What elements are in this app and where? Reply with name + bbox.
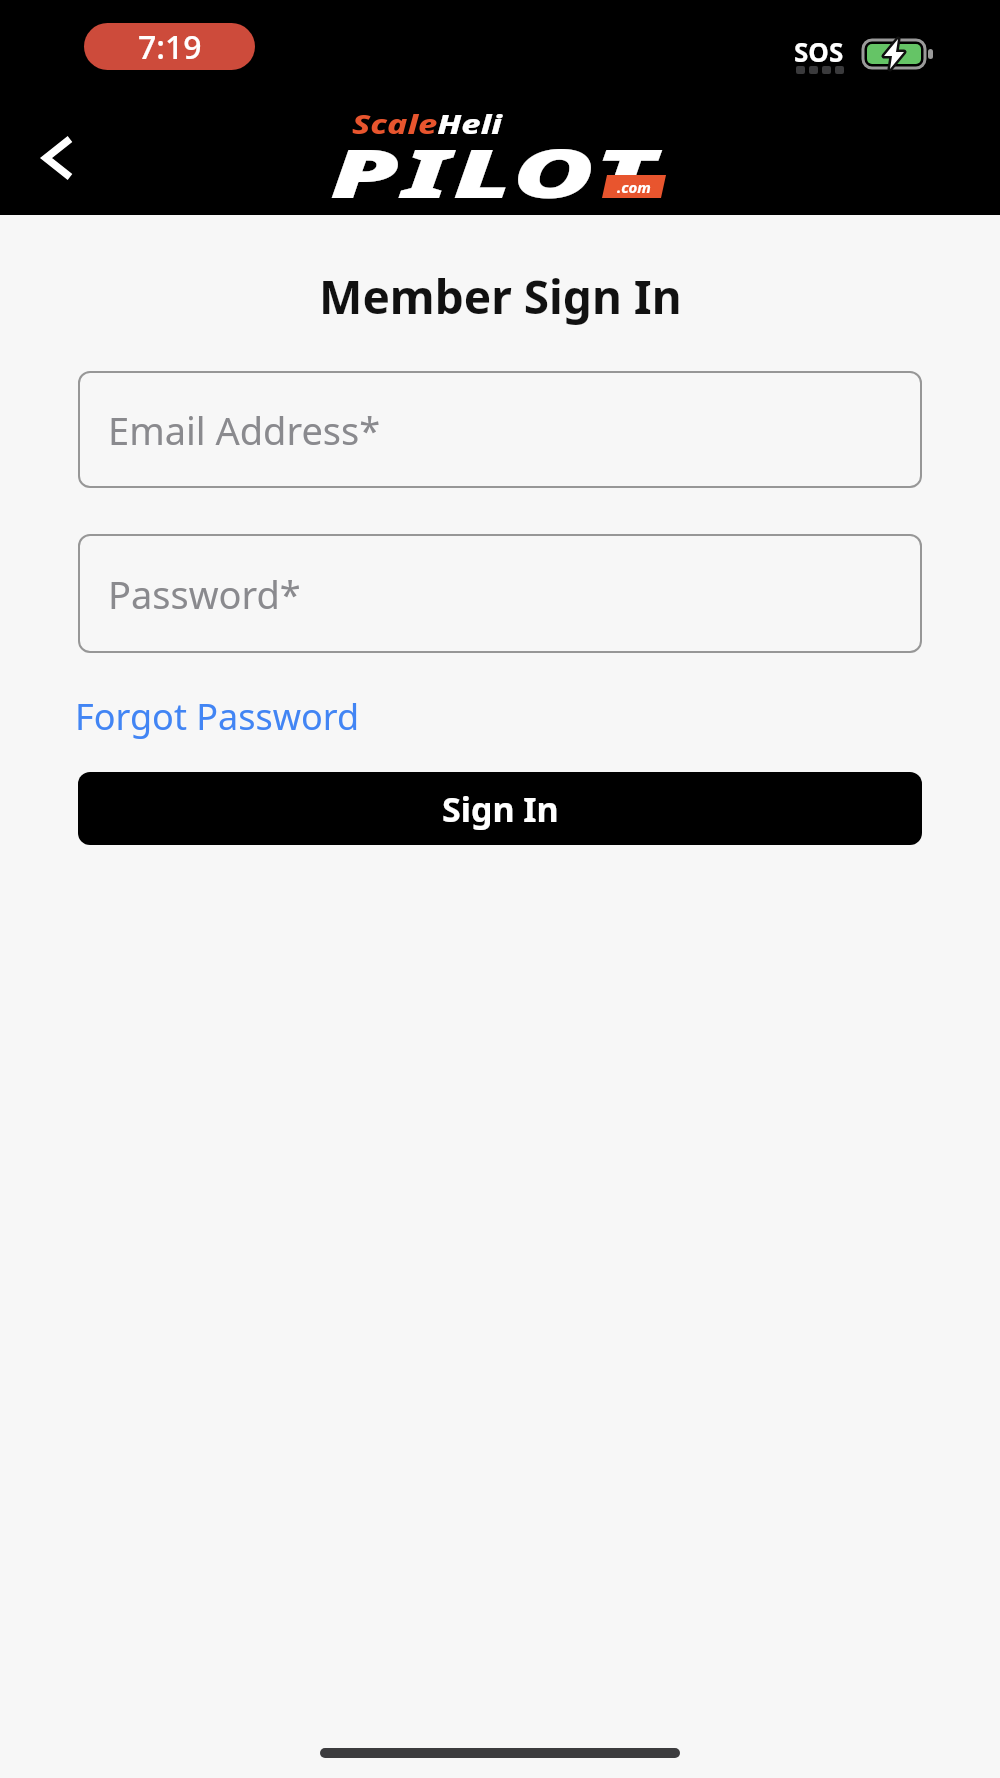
- button[interactable]: Password*: [78, 534, 922, 653]
- staticText: 7:19: [138, 25, 202, 69]
- staticText: Sign In: [442, 786, 559, 832]
- button[interactable]: 7:19: [84, 23, 255, 70]
- button[interactable]: Sign In: [78, 772, 922, 845]
- staticText: ScaleHeli: [352, 105, 502, 142]
- button[interactable]: Forgot Password: [75, 692, 360, 741]
- staticText: Email Address*: [108, 404, 381, 456]
- staticText: PILOT: [330, 125, 660, 218]
- button[interactable]: [20, 120, 95, 195]
- staticText: Password*: [108, 568, 301, 620]
- staticText: Member Sign In: [319, 265, 682, 328]
- staticText: SOS: [794, 34, 844, 69]
- staticText: .com: [617, 177, 651, 197]
- button[interactable]: Email Address*: [78, 371, 922, 488]
